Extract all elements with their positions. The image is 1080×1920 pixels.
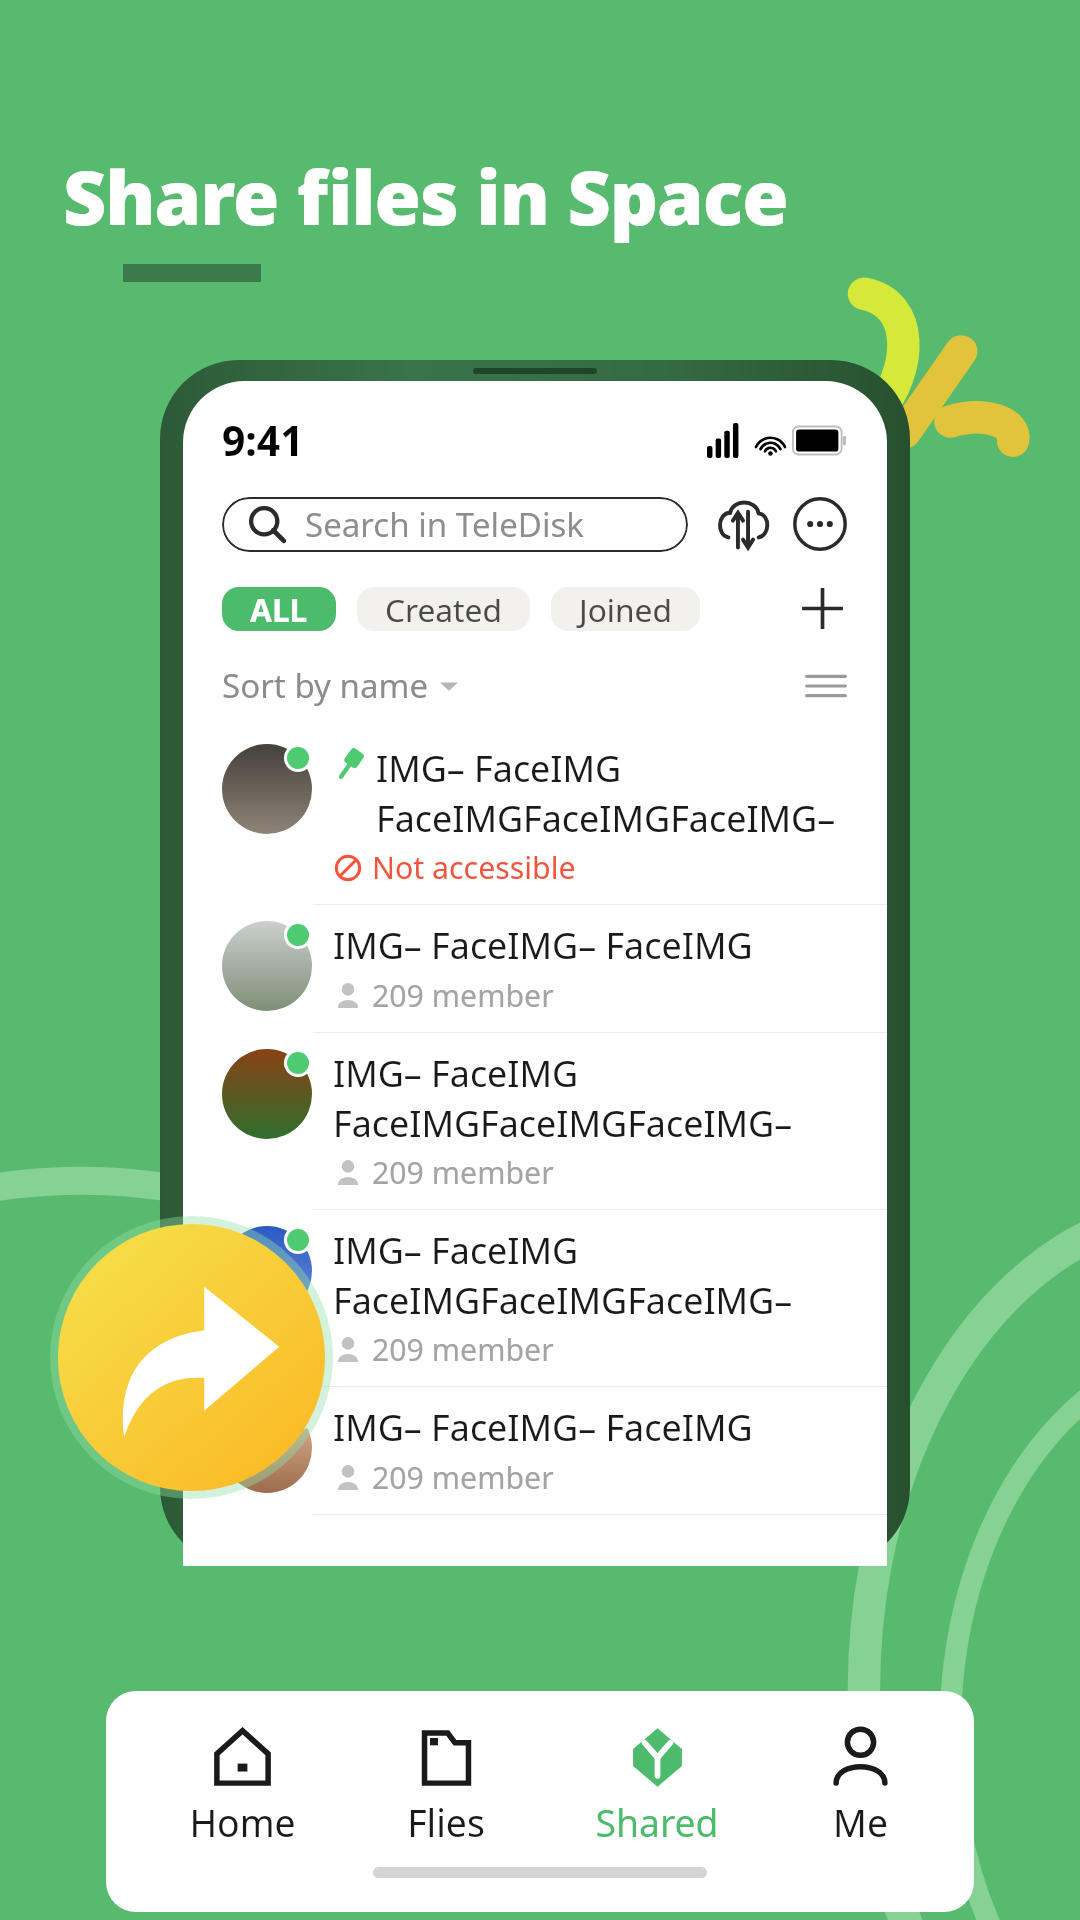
button[interactable]: Sort by name: [222, 663, 458, 708]
staticText: 209 member: [372, 1329, 554, 1370]
staticText: IMG– FaceIMG FaceIMGFaceIMGFaceIMG–FaceI…: [333, 1049, 873, 1147]
staticText: Home: [189, 1797, 296, 1848]
button[interactable]: Search in TeleDisk: [222, 497, 688, 552]
button[interactable]: ALL: [222, 587, 336, 631]
button[interactable]: Joined: [551, 587, 700, 631]
button[interactable]: More options: [792, 496, 848, 552]
button[interactable]: IMG– FaceIMG FaceIMGFaceIMGFaceIMG–FaceI…: [183, 1033, 887, 1210]
button[interactable]: IMG– FaceIMG– FaceIMG: [183, 1387, 887, 1515]
staticText: IMG– FaceIMG– FaceIMG: [333, 1403, 753, 1452]
staticText: Not accessible: [372, 847, 576, 888]
button[interactable]: Created: [357, 587, 530, 631]
button[interactable]: Sync: [715, 496, 771, 552]
staticText: Sort by name: [222, 663, 429, 708]
staticText: 209 member: [372, 1152, 554, 1193]
staticText: IMG– FaceIMG– FaceIMG: [333, 921, 753, 970]
staticText: Search in TeleDisk: [305, 502, 584, 547]
button[interactable]: IMG– FaceIMG– FaceIMG: [183, 905, 887, 1033]
button[interactable]: Me: [802, 1723, 919, 1852]
staticText: IMG– FaceIMG FaceIMGFaceIMGFaceIMG–FaceI…: [376, 744, 873, 842]
staticText: Joined: [579, 588, 672, 631]
button[interactable]: Home: [161, 1723, 324, 1852]
button[interactable]: Add: [797, 583, 848, 634]
staticText: Me: [833, 1797, 888, 1848]
staticText: Shared: [595, 1797, 719, 1848]
staticText: Flies: [407, 1797, 485, 1848]
button[interactable]: Flies: [379, 1723, 513, 1852]
staticText: IMG– FaceIMG FaceIMGFaceIMGFaceIMG–FaceI…: [333, 1226, 873, 1324]
button[interactable]: IMG– FaceIMG FaceIMGFaceIMGFaceIMG–FaceI…: [183, 728, 887, 905]
button[interactable]: List options: [804, 664, 848, 708]
staticText: 209 member: [372, 1457, 554, 1498]
button[interactable]: Shared: [567, 1723, 747, 1852]
staticText: Share files in Space: [63, 145, 788, 247]
staticText: Created: [385, 588, 502, 631]
staticText: 9:41: [222, 412, 304, 468]
button[interactable]: IMG– FaceIMG FaceIMGFaceIMGFaceIMG–FaceI…: [183, 1210, 887, 1387]
staticText: 209 member: [372, 975, 554, 1016]
staticText: ALL: [250, 588, 308, 631]
